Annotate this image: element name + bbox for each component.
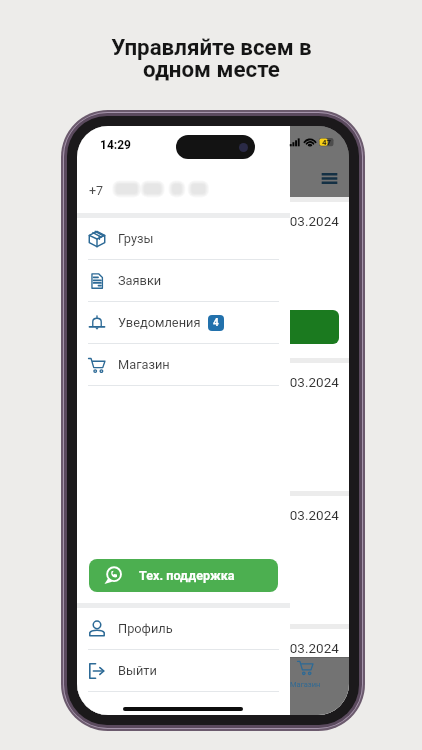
button[interactable]: Магазин [77, 344, 290, 386]
staticText: 16.03.2024 [271, 213, 339, 229]
button[interactable]: Профиль [77, 608, 290, 650]
button[interactable]: Грузы [90, 659, 151, 689]
button[interactable]: Заявки [77, 260, 290, 302]
button[interactable]: Заявки [151, 659, 212, 689]
button[interactable]: Open menu [321, 171, 338, 188]
staticText: Управляйте всем в одном месте [111, 34, 312, 82]
button[interactable]: Грузы [77, 218, 290, 260]
staticText: Магазин [118, 357, 170, 372]
button[interactable]: Магазин [274, 659, 336, 689]
button[interactable]: Выйти [77, 650, 290, 692]
staticText: Заявки [118, 273, 162, 288]
staticText: 14.03.2024 [271, 507, 339, 523]
staticText: 15.03.2024 [271, 374, 339, 390]
button[interactable]: Уведомления [77, 302, 290, 344]
button[interactable]: Тех. поддержка [89, 559, 278, 592]
staticText: 4 [213, 317, 219, 329]
staticText: Тех. поддержка [139, 568, 235, 583]
staticText: Магазин [290, 680, 321, 689]
staticText: 47 [322, 138, 332, 147]
staticText: Грузы [118, 231, 154, 246]
staticText: Профиль [118, 621, 173, 636]
staticText: 13.03.2024 [271, 640, 339, 656]
staticText: 14:29 [100, 138, 131, 152]
staticText: +7 [89, 183, 104, 198]
staticText: Уведомления [118, 315, 201, 330]
staticText: Выйти [118, 663, 157, 678]
button[interactable] [91, 310, 339, 344]
